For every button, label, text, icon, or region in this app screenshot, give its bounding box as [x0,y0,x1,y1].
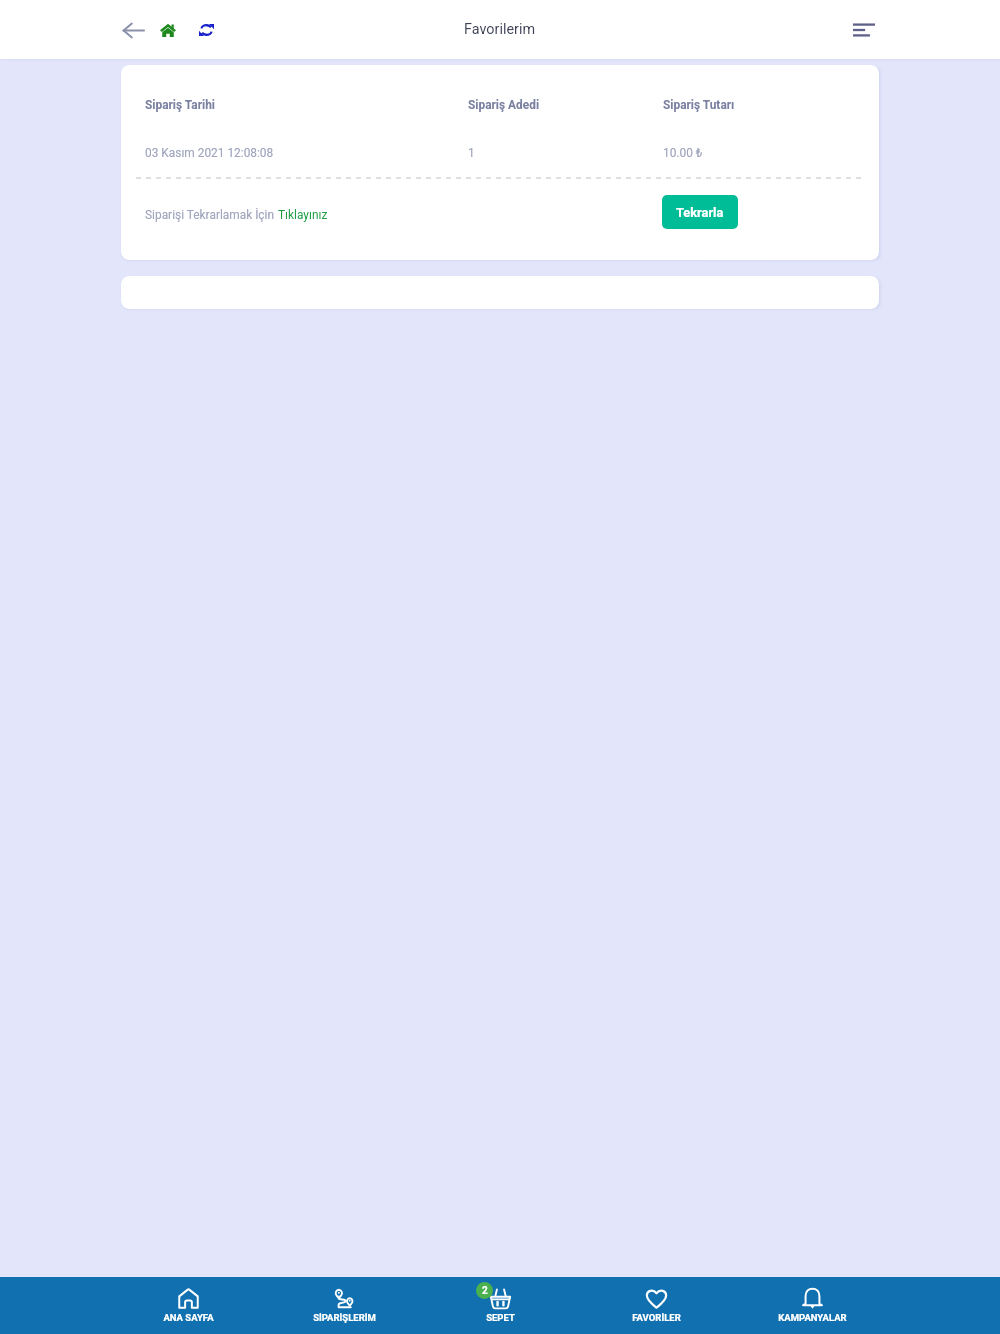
staticText: Sipariş Adedi [468,98,540,112]
staticText: 1 [468,146,475,160]
staticText: ANA SAYFA [163,1312,214,1323]
staticText: 2 [482,1285,488,1297]
button[interactable]: Home [150,12,186,48]
staticText: SEPET [486,1312,515,1323]
button[interactable]: SİPARİŞLERİM [200,1277,400,1334]
button[interactable]: Siparişi Tekrarlamak İçin [145,208,328,222]
staticText: Siparişi Tekrarlamak İçin [145,208,278,222]
staticText: 03 Kasım 2021 12:08:08 [145,146,274,160]
staticText: 10.00 ₺ [663,146,703,160]
button[interactable]: Refresh [188,12,224,48]
staticText: Tekrarla [676,205,724,220]
staticText: Favorilerim [464,21,536,38]
staticText: SİPARİŞLERİM [313,1312,376,1323]
button[interactable]: FAVORİLER [600,1277,800,1334]
button[interactable]: Menu [844,10,884,50]
staticText: KAMPANYALAR [778,1312,847,1323]
staticText: Sipariş Tutarı [663,98,735,112]
staticText: Sipariş Tarihi [145,98,215,112]
button[interactable]: Back [115,12,151,48]
button[interactable]: ANA SAYFA [0,1277,200,1334]
button[interactable]: KAMPANYALAR [800,1277,1000,1334]
staticText: Tıklayınız [278,208,328,222]
staticText: FAVORİLER [632,1312,681,1323]
button[interactable]: 2 [400,1277,600,1334]
button[interactable]: Tekrarla [662,195,738,229]
